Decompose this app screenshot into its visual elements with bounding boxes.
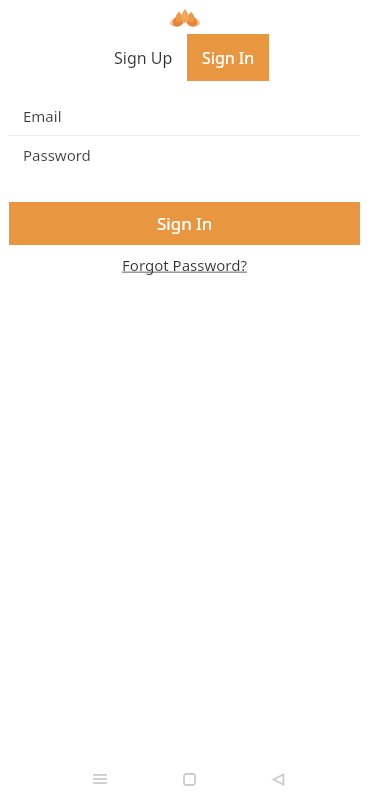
button[interactable]: Forgot Password?: [116, 249, 253, 281]
button[interactable]: Sign In: [9, 202, 360, 245]
button[interactable]: Back: [258, 759, 298, 799]
staticText: Sign Up: [114, 47, 173, 69]
button[interactable]: Recent apps: [80, 759, 120, 799]
button[interactable]: Home: [169, 759, 209, 799]
button[interactable]: Password: [0, 136, 369, 174]
button[interactable]: Sign Up: [100, 34, 187, 81]
button[interactable]: Email: [0, 97, 369, 135]
staticText: Password: [23, 145, 91, 165]
button[interactable]: Sign In: [187, 34, 269, 81]
staticText: Forgot Password?: [122, 255, 247, 275]
staticText: Email: [23, 106, 62, 126]
staticText: Sign In: [157, 212, 213, 235]
staticText: Sign In: [202, 47, 255, 69]
